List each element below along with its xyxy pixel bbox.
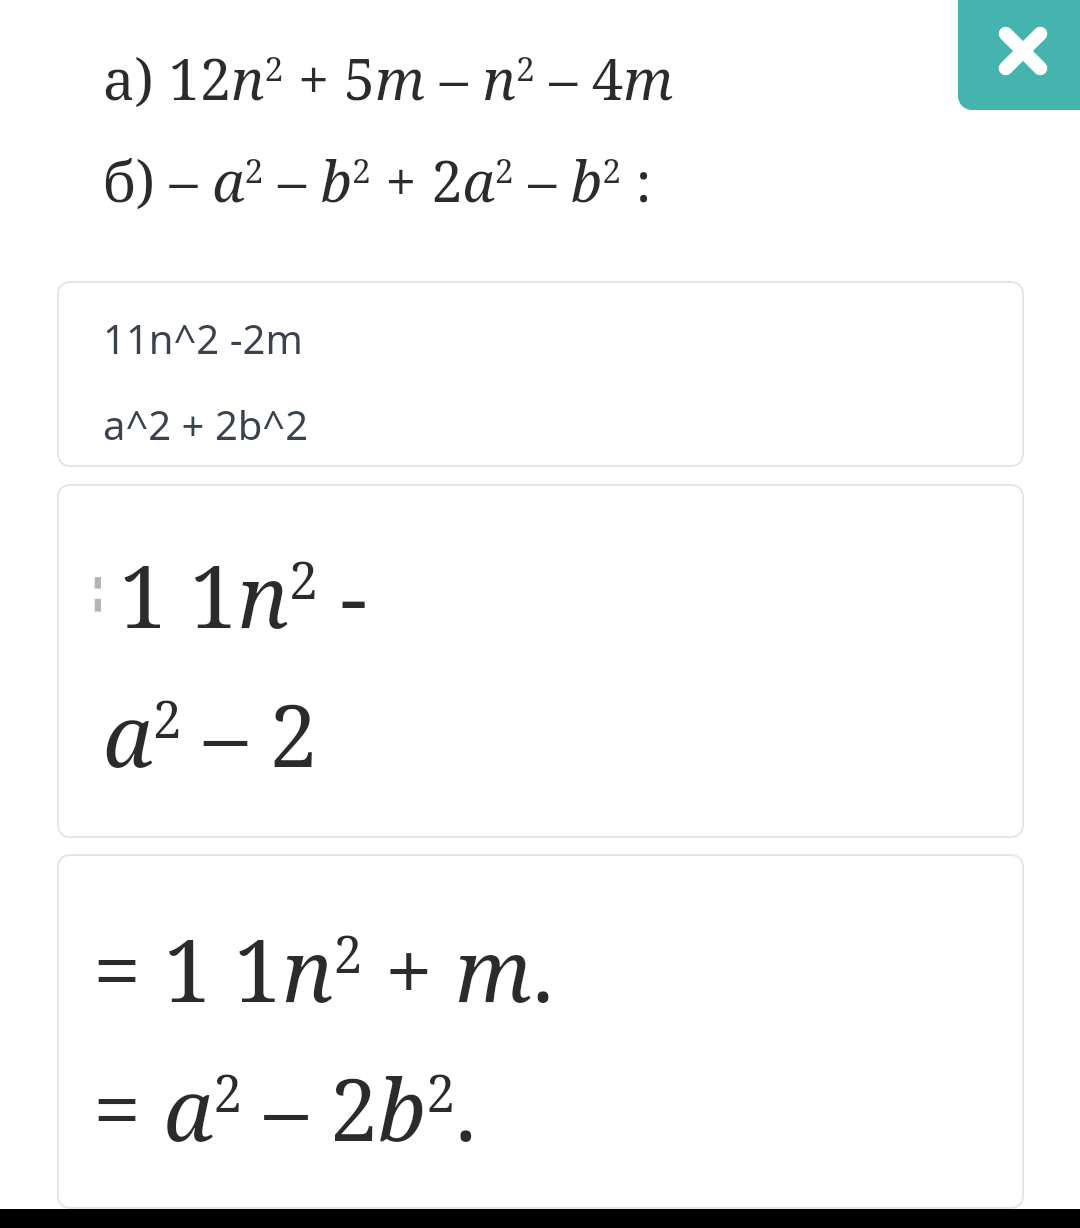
button[interactable]: = 1 1n2 + m. [57,854,1024,1209]
staticText: б) – a2 – b2 + 2a2 – b2 : [103,142,652,218]
staticText: a2 – 2 [103,675,318,792]
staticText: a^2 + 2b^2 [103,397,309,451]
staticText: 1 1n2 - [119,536,367,653]
button[interactable]: 11n^2 -2m [57,281,1024,467]
staticText: = a2 – 2b2. [93,1049,477,1166]
staticText: = 1 1n2 + m. [93,910,554,1027]
staticText: 11n^2 -2m [103,311,303,365]
button[interactable]: Close [958,0,1080,110]
staticText: a) 12n2 + 5m – n2 – 4m [103,40,674,116]
button[interactable]: 1 1n2 - [57,484,1024,838]
